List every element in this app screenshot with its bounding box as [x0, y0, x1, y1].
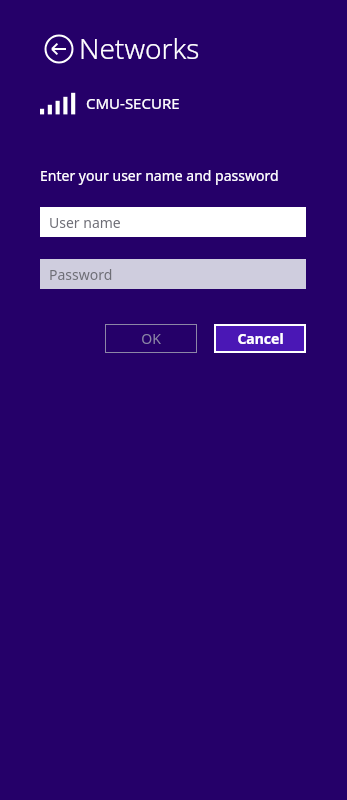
staticText: User name	[49, 213, 121, 232]
button[interactable]: CMU-SECURE	[40, 86, 306, 120]
staticText: Password	[49, 265, 113, 284]
staticText: OK	[141, 329, 161, 348]
button[interactable]: Back	[44, 34, 74, 64]
staticText: CMU-SECURE	[86, 93, 180, 113]
button[interactable]: Password	[40, 259, 306, 289]
button[interactable]: Cancel	[214, 324, 306, 353]
button[interactable]: User name	[40, 207, 306, 237]
staticText: Enter your user name and password	[40, 166, 279, 185]
staticText: Cancel	[237, 329, 284, 348]
button[interactable]: OK	[105, 324, 197, 353]
staticText: Networks	[79, 29, 200, 67]
